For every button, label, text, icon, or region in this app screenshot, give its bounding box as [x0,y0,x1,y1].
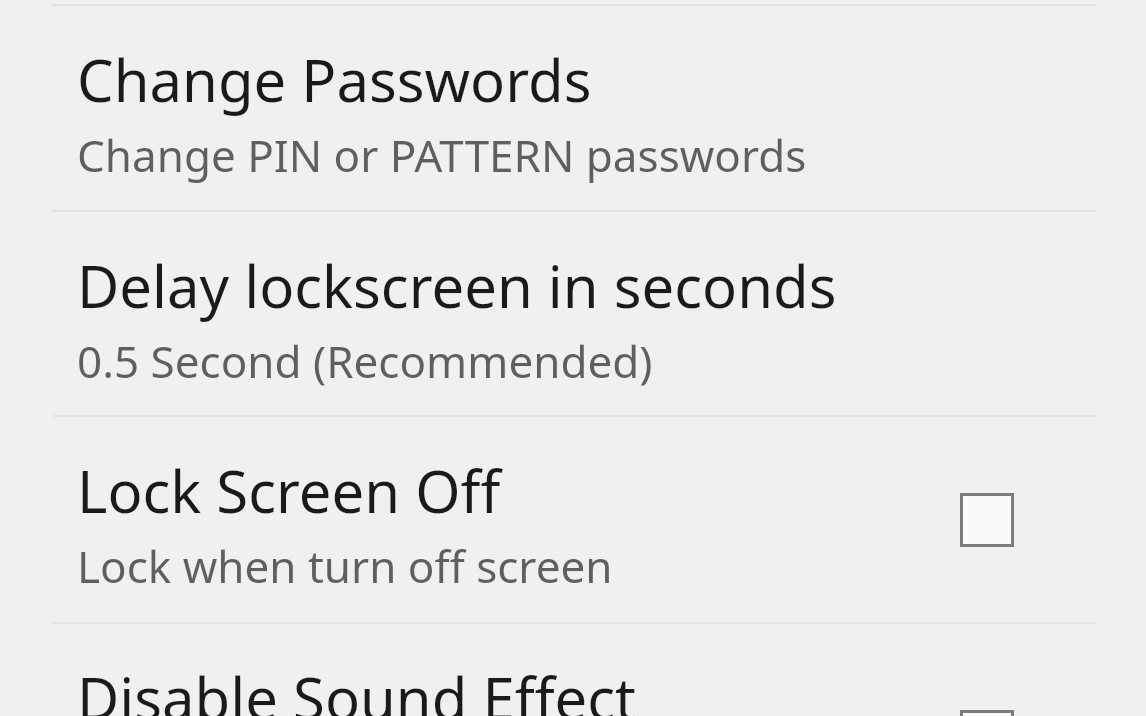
button[interactable]: Lock Screen Off [0,417,1146,622]
other: Lock Screen Off [960,493,1014,547]
staticText: 0.5 Second (Recommended) [77,331,653,391]
other: Disable Sound Effect [960,710,1014,716]
button[interactable]: Delay lockscreen in seconds [0,212,1146,415]
staticText: Change Passwords [77,40,592,119]
staticText: Delay lockscreen in seconds [77,246,837,325]
staticText: Lock when turn off screen [77,536,613,596]
staticText: Disable Sound Effect [77,658,637,716]
button[interactable]: Change Passwords [0,6,1146,210]
staticText: Lock Screen Off [77,451,501,530]
staticText: Change PIN or PATTERN passwords [77,125,807,185]
button[interactable]: Disable Sound Effect [0,624,1146,716]
